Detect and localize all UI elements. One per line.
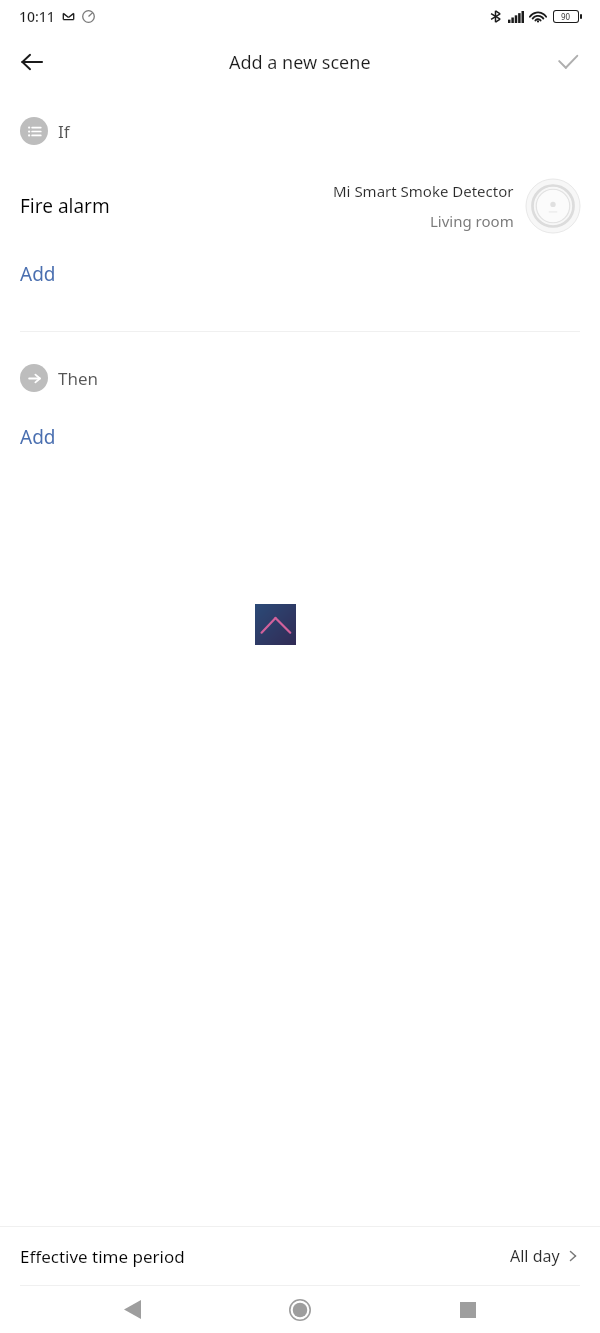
staticText: Effective time period (20, 1245, 185, 1268)
staticText: Add a new scene (229, 50, 371, 75)
button[interactable]: Then (0, 360, 600, 396)
button[interactable]: Fire alarm (0, 175, 600, 237)
staticText: Mi Smart Smoke Detector (333, 181, 514, 201)
button[interactable]: Add (0, 255, 80, 293)
button[interactable]: Effective time period (0, 1227, 600, 1285)
button[interactable]: Add (0, 418, 80, 456)
staticText: All day (510, 1245, 560, 1267)
button[interactable]: Back (8, 38, 56, 86)
staticText: Then (58, 367, 99, 390)
staticText: Fire alarm (20, 193, 110, 219)
button[interactable]: Recent apps (444, 1286, 492, 1333)
staticText: Living room (430, 211, 514, 231)
other: Floating overlay (255, 604, 296, 645)
staticText: 10:11 (19, 7, 55, 26)
staticText: Add (20, 424, 56, 450)
staticText: Add (20, 261, 56, 287)
staticText: If (58, 120, 70, 143)
button[interactable]: If (0, 113, 600, 149)
staticText: 90 (561, 11, 571, 22)
button[interactable]: Save scene (544, 38, 592, 86)
button[interactable]: Back (108, 1286, 156, 1333)
button[interactable]: Home (276, 1286, 324, 1333)
